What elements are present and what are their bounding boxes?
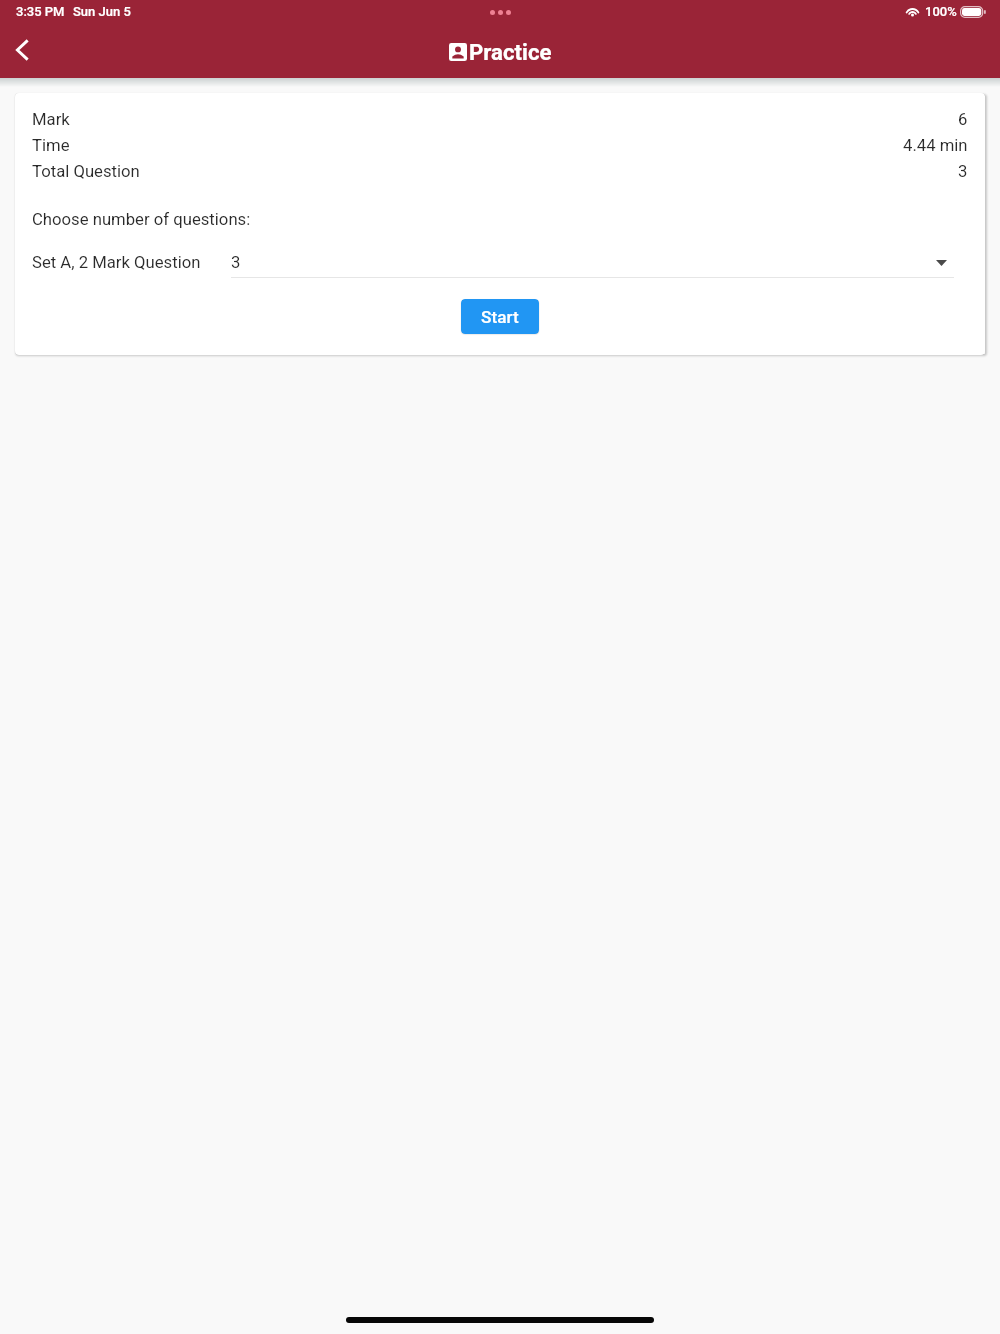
staticText: 3 (958, 162, 968, 182)
staticText: 3:35 PM (16, 4, 65, 19)
staticText: 6 (958, 110, 968, 130)
staticText: Choose number of questions: (32, 210, 251, 230)
staticText: 3 (231, 253, 943, 273)
staticText: 100% (925, 4, 957, 19)
staticText: 4.44 min (903, 136, 968, 156)
button[interactable]: Start (461, 299, 539, 334)
staticText: Set A, 2 Mark Question (32, 253, 201, 273)
staticText: Mark (32, 110, 70, 130)
staticText: Time (32, 136, 70, 156)
button[interactable]: Select number of questions (231, 253, 954, 278)
button[interactable]: Back (0, 25, 44, 78)
staticText: Start (481, 307, 519, 327)
staticText: Total Question (32, 162, 140, 182)
staticText: Practice (469, 39, 552, 65)
staticText: Sun Jun 5 (73, 4, 131, 19)
